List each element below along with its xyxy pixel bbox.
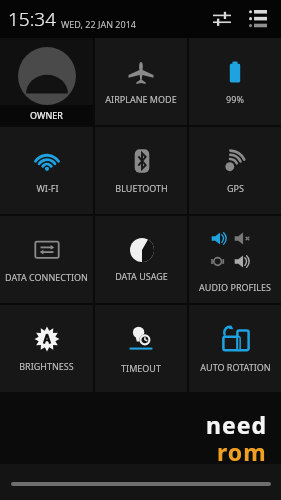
- button[interactable]: BLUETOOTH: [95, 127, 187, 214]
- staticText: BLUETOOTH: [115, 182, 168, 194]
- staticText: need: [206, 409, 267, 440]
- staticText: rom: [217, 436, 267, 467]
- button[interactable]: AIRPLANE MODE: [95, 38, 187, 125]
- staticText: 15:34: [8, 6, 57, 32]
- button[interactable]: GPS: [189, 127, 281, 214]
- staticText: AIRPLANE MODE: [105, 93, 177, 105]
- staticText: GPS: [227, 182, 244, 194]
- staticText: OWNER: [30, 109, 63, 121]
- button[interactable]: 99%: [189, 38, 281, 125]
- button[interactable]: BRIGHTNESS: [0, 305, 93, 392]
- staticText: WED, 22 JAN 2014: [61, 18, 136, 30]
- staticText: WI-FI: [36, 182, 59, 194]
- staticText: DATA CONNECTION: [5, 271, 88, 283]
- button[interactable]: TIMEOUT: [95, 305, 187, 392]
- staticText: BRIGHTNESS: [19, 360, 74, 372]
- button[interactable]: WI-FI: [0, 127, 93, 214]
- staticText: TIMEOUT: [121, 362, 161, 374]
- staticText: 99%: [226, 93, 244, 105]
- button[interactable]: AUTO ROTATION: [189, 305, 281, 392]
- staticText: AUDIO PROFILES: [199, 281, 271, 293]
- button[interactable]: [11, 482, 271, 486]
- staticText: AUTO ROTATION: [200, 361, 271, 373]
- button[interactable]: Notifications list: [245, 6, 271, 32]
- button[interactable]: DATA USAGE: [95, 216, 187, 303]
- button[interactable]: AUDIO PROFILES: [189, 216, 281, 303]
- button[interactable]: OWNER: [0, 38, 93, 125]
- button[interactable]: DATA CONNECTION: [0, 216, 93, 303]
- staticText: DATA USAGE: [115, 270, 168, 282]
- button[interactable]: Settings: [209, 6, 235, 32]
